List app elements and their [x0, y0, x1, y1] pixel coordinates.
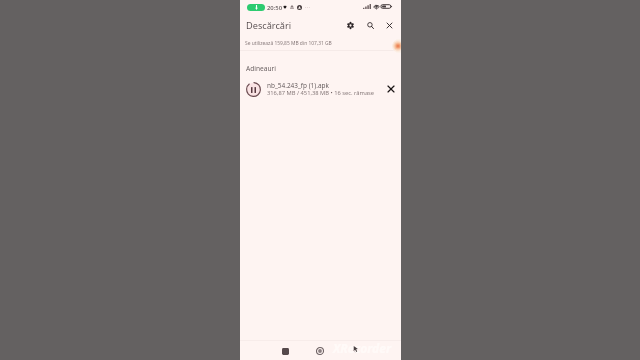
button[interactable]: Cancel download: [383, 81, 399, 97]
button[interactable]: Close: [381, 17, 397, 33]
staticText: Descărcări: [246, 19, 292, 32]
button[interactable]: Settings: [342, 17, 358, 33]
staticText: nb_54.243_fp (1).apk: [267, 81, 329, 90]
button[interactable]: Recents: [277, 343, 293, 359]
button[interactable]: Back: [346, 342, 362, 358]
staticText: Adineauri: [246, 64, 276, 73]
staticText: XRecorder: [333, 340, 391, 356]
staticText: Se utilizează 159,85 MB din 107,31 GB: [245, 40, 332, 47]
button[interactable]: Home: [312, 343, 328, 359]
button[interactable]: Screen recorder: [392, 39, 401, 53]
button[interactable]: nb_54.243_fp (1).apk: [240, 77, 401, 99]
staticText: 316,87 MB / 451,38 MB • 16 sec. rămase: [267, 89, 375, 97]
staticText: 20:50: [267, 4, 283, 12]
button[interactable]: Search: [362, 17, 378, 33]
